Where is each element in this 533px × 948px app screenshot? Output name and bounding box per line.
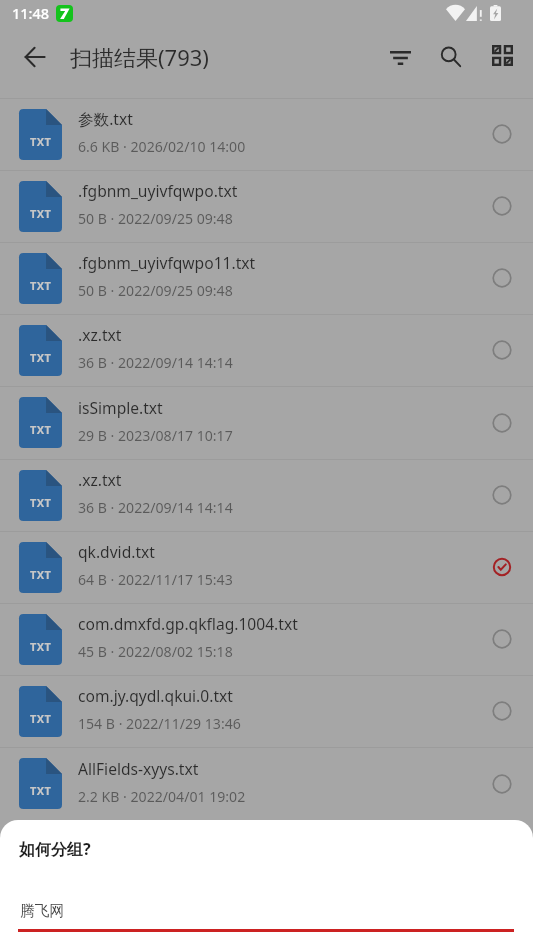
button[interactable]: TXT — [0, 386, 533, 459]
staticText: .fgbnm_uyivfqwpo.txt — [78, 180, 238, 201]
button[interactable]: Select — [482, 475, 522, 515]
staticText: TXT — [30, 639, 52, 654]
staticText: 6.6 KB · 2026/02/10 14:00 — [78, 137, 246, 156]
staticText: 2.2 KB · 2022/04/01 19:02 — [78, 787, 246, 806]
button[interactable]: Back — [10, 34, 58, 82]
staticText: 64 B · 2022/11/17 15:43 — [78, 570, 233, 589]
staticText: TXT — [30, 422, 52, 437]
staticText: .xz.txt — [78, 469, 122, 490]
staticText: TXT — [30, 711, 52, 726]
staticText: 36 B · 2022/09/14 14:14 — [78, 498, 233, 517]
staticText: 11:48 — [12, 3, 50, 23]
button[interactable]: TXT — [0, 531, 533, 603]
staticText: 参数.txt — [78, 108, 133, 129]
staticText: isSimple.txt — [78, 397, 163, 418]
staticText: 如何分组? — [19, 838, 91, 860]
staticText: com.dmxfd.gp.qkflag.1004.txt — [78, 613, 298, 634]
staticText: 36 B · 2022/09/14 14:14 — [78, 353, 233, 372]
button[interactable]: Select — [482, 330, 522, 370]
button[interactable]: Select — [482, 258, 522, 298]
button[interactable]: Select — [482, 186, 522, 226]
button[interactable]: Select — [482, 764, 522, 804]
staticText: .xz.txt — [78, 324, 122, 345]
button[interactable]: Search — [428, 34, 474, 80]
button[interactable]: TXT — [0, 170, 533, 242]
staticText: qk.dvid.txt — [78, 541, 155, 562]
staticText: 29 B · 2023/08/17 10:17 — [78, 426, 233, 445]
staticText: 45 B · 2022/08/02 15:18 — [78, 642, 233, 661]
staticText: TXT — [30, 278, 52, 293]
button[interactable]: TXT — [0, 242, 533, 314]
staticText: TXT — [30, 783, 52, 798]
button[interactable]: Grid view — [479, 32, 525, 78]
staticText: com.jy.qydl.qkui.0.txt — [78, 685, 233, 706]
staticText: 154 B · 2022/11/29 13:46 — [78, 714, 241, 733]
button[interactable]: TXT — [0, 675, 533, 747]
staticText: .fgbnm_uyivfqwpo11.txt — [78, 252, 256, 273]
staticText: TXT — [30, 495, 52, 510]
staticText: 50 B · 2022/09/25 09:48 — [78, 209, 233, 228]
staticText: 50 B · 2022/09/25 09:48 — [78, 281, 233, 300]
button[interactable]: TXT — [0, 603, 533, 675]
staticText: TXT — [30, 567, 52, 582]
staticText: AllFields-xyys.txt — [78, 758, 199, 779]
button[interactable]: Select — [482, 547, 522, 587]
button[interactable]: TXT — [0, 98, 533, 170]
button[interactable]: Filter — [377, 35, 423, 81]
button[interactable]: Select — [482, 403, 522, 443]
staticText: 扫描结果(793) — [70, 42, 209, 72]
button[interactable]: Select — [482, 619, 522, 659]
button[interactable]: TXT — [0, 747, 533, 820]
button[interactable]: Select — [482, 114, 522, 154]
staticText: 腾飞网 — [20, 902, 65, 921]
button[interactable]: TXT — [0, 314, 533, 386]
staticText: TXT — [30, 206, 52, 221]
staticText: TXT — [30, 134, 52, 149]
button[interactable]: Select — [482, 691, 522, 731]
button[interactable]: TXT — [0, 459, 533, 531]
staticText: TXT — [30, 350, 52, 365]
